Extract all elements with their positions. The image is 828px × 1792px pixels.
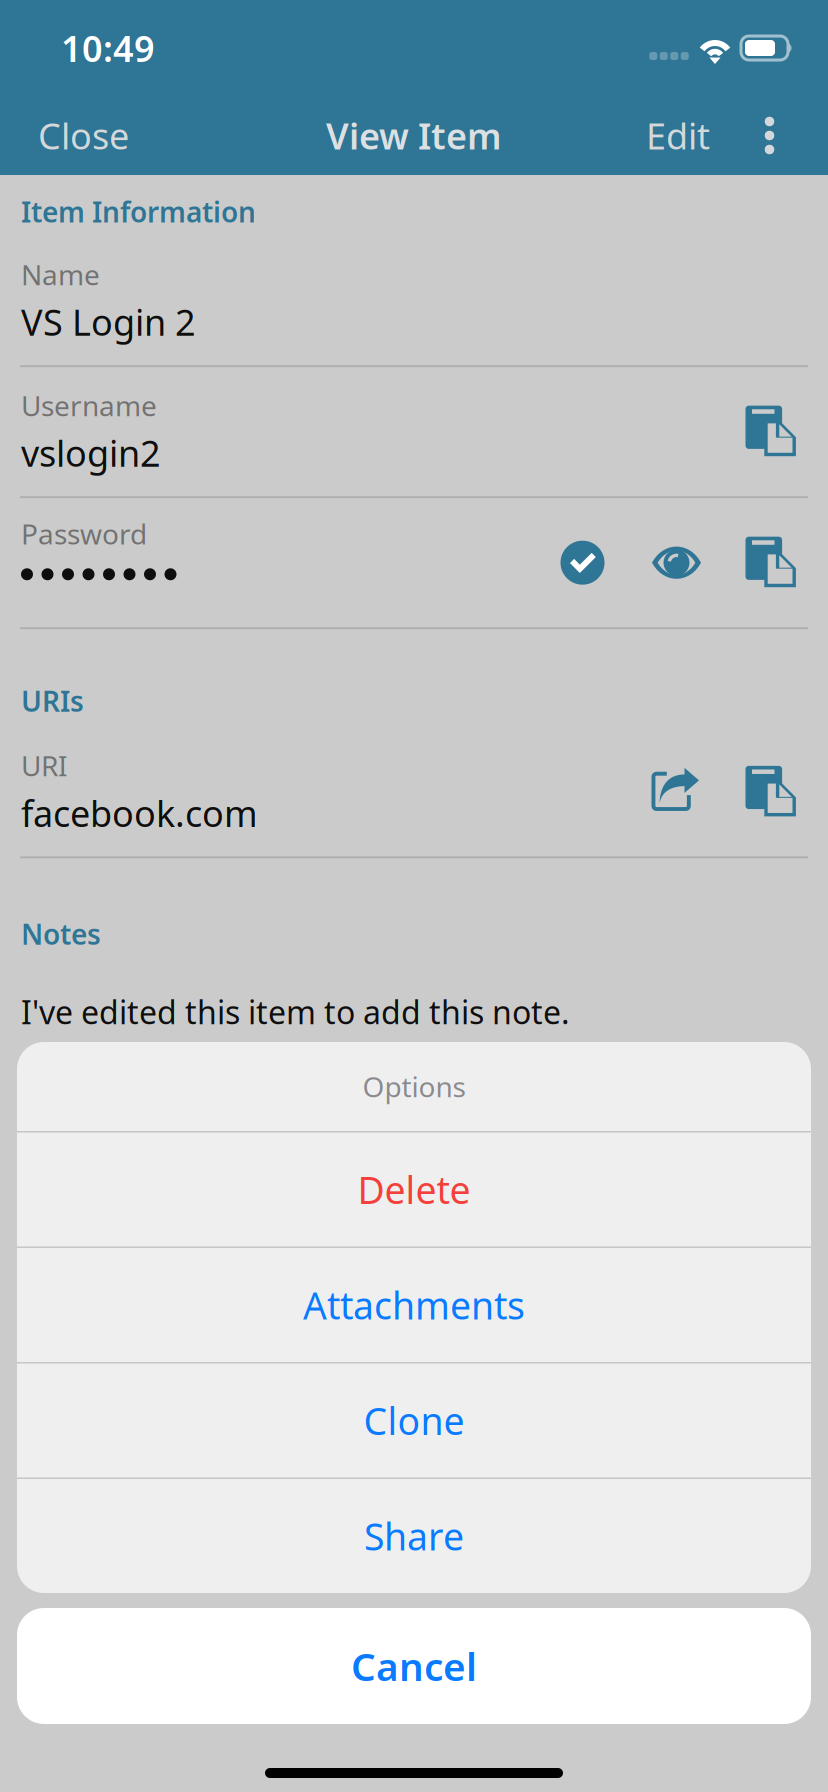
button[interactable]: Check password exposure bbox=[543, 513, 622, 613]
staticText: Password bbox=[21, 515, 147, 552]
button[interactable]: Launch URI bbox=[624, 742, 731, 842]
staticText: Item Information bbox=[21, 193, 256, 230]
staticText: Name bbox=[21, 256, 100, 293]
button[interactable]: Show password bbox=[622, 513, 731, 613]
button[interactable]: Copy username bbox=[731, 382, 812, 482]
button[interactable]: Attachments bbox=[17, 1248, 811, 1362]
button[interactable]: Cancel bbox=[17, 1608, 811, 1724]
staticText: Username bbox=[21, 387, 157, 424]
staticText: 10:49 bbox=[61, 24, 155, 72]
button[interactable]: Clone bbox=[17, 1363, 811, 1477]
staticText: vslogin2 bbox=[21, 429, 161, 477]
staticText: Close bbox=[38, 112, 129, 159]
staticText: Share bbox=[364, 1511, 464, 1561]
button[interactable]: More options bbox=[720, 96, 819, 175]
button[interactable]: Copy password bbox=[731, 513, 812, 613]
staticText: Cancel bbox=[351, 1640, 477, 1692]
button[interactable]: Close bbox=[28, 96, 139, 175]
button[interactable]: Share bbox=[17, 1479, 811, 1593]
button[interactable]: Delete bbox=[17, 1132, 811, 1246]
button[interactable]: Edit bbox=[636, 96, 720, 175]
staticText: Notes bbox=[21, 915, 101, 953]
staticText: URIs bbox=[21, 682, 84, 719]
staticText: Options bbox=[362, 1068, 465, 1105]
staticText: View Item bbox=[326, 112, 502, 159]
button[interactable]: Copy URI bbox=[731, 742, 812, 842]
staticText: VS Login 2 bbox=[21, 298, 196, 346]
staticText: facebook.com bbox=[21, 789, 258, 837]
staticText: Delete bbox=[357, 1165, 470, 1214]
staticText: Edit bbox=[646, 112, 710, 159]
staticText: Attachments bbox=[303, 1280, 525, 1330]
staticText: Clone bbox=[363, 1396, 464, 1445]
staticText: I've edited this item to add this note. bbox=[21, 990, 570, 1033]
staticText: URI bbox=[21, 747, 67, 784]
